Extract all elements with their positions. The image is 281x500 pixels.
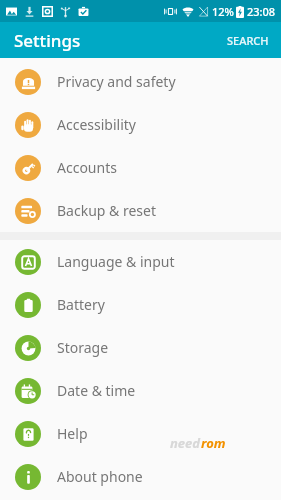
staticText: Battery xyxy=(57,295,105,314)
staticText: SEARCH xyxy=(227,33,269,48)
button[interactable]: Storage xyxy=(0,326,281,369)
staticText: rom xyxy=(201,434,226,452)
button[interactable]: Date & time xyxy=(0,369,281,412)
staticText: need xyxy=(170,434,201,452)
staticText: Storage xyxy=(57,338,109,357)
button[interactable]: Privacy and safety xyxy=(0,60,281,103)
staticText: Accessibility xyxy=(57,115,136,134)
staticText: 23:08 xyxy=(247,4,276,19)
staticText: Help xyxy=(57,424,88,443)
staticText: Date & time xyxy=(57,381,136,400)
staticText: About phone xyxy=(57,467,143,486)
button[interactable]: Accounts xyxy=(0,146,281,189)
staticText: Accounts xyxy=(57,158,117,177)
staticText: Privacy and safety xyxy=(57,72,176,91)
staticText: Language & input xyxy=(57,252,175,271)
button[interactable]: Backup & reset xyxy=(0,189,281,232)
button[interactable]: SEARCH xyxy=(215,25,281,56)
button[interactable]: About phone xyxy=(0,455,281,498)
button[interactable]: Battery xyxy=(0,283,281,326)
button[interactable]: Accessibility xyxy=(0,103,281,146)
staticText: Backup & reset xyxy=(57,201,156,220)
button[interactable]: Help xyxy=(0,412,281,455)
staticText: Settings xyxy=(14,29,81,52)
button[interactable]: Language & input xyxy=(0,240,281,283)
staticText: 12% xyxy=(212,4,234,19)
